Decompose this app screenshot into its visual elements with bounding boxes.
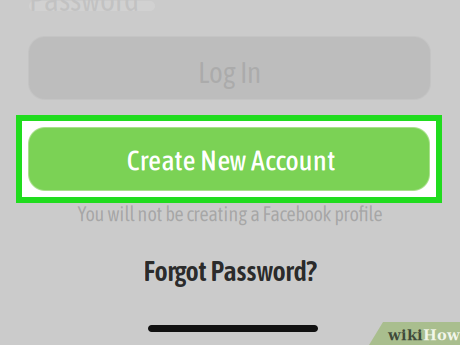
button[interactable]: Forgot Password?	[0, 257, 460, 285]
staticText: Create New Account	[127, 144, 335, 177]
staticText: Forgot Password?	[143, 255, 316, 287]
button[interactable]: Create New Account	[16, 115, 442, 203]
staticText: How	[423, 326, 460, 344]
staticText: Log In	[198, 56, 261, 89]
staticText: You will not be creating a Facebook prof…	[77, 202, 382, 225]
staticText: Password	[29, 0, 139, 18]
staticText: wiki	[388, 326, 423, 344]
